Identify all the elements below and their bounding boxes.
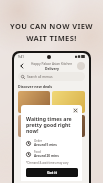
- staticText: Waiting times are pretty good right now!: [26, 115, 78, 135]
- button[interactable]: [18, 91, 50, 113]
- button[interactable]: Got it: [26, 168, 78, 177]
- button[interactable]: Account: [77, 62, 85, 70]
- staticText: Food: [34, 150, 41, 154]
- staticText: YOU CAN NOW VIEW: [10, 21, 93, 31]
- staticText: Order: [34, 139, 42, 143]
- staticText: Search all menus: [27, 75, 53, 79]
- button[interactable]: [52, 91, 85, 113]
- staticText: Around 5 mins: [34, 143, 57, 147]
- staticText: Got it: [47, 170, 57, 175]
- staticText: WAIT TIMES!: [26, 33, 77, 43]
- button[interactable]: [18, 115, 50, 137]
- staticText: Delivery: [45, 66, 59, 71]
- staticText: Happy Palace Asian Kitchen: [31, 62, 73, 66]
- staticText: Around 20 mins: [34, 154, 59, 158]
- staticText: *Demand & wait times may vary: [26, 161, 69, 165]
- button[interactable]: Back: [18, 62, 26, 70]
- staticText: 9:41: [18, 55, 24, 59]
- button[interactable]: [52, 115, 85, 137]
- staticText: Discover new deals: [18, 84, 53, 89]
- button[interactable]: Search all menus: [18, 72, 85, 81]
- button[interactable]: Close: [73, 108, 78, 113]
